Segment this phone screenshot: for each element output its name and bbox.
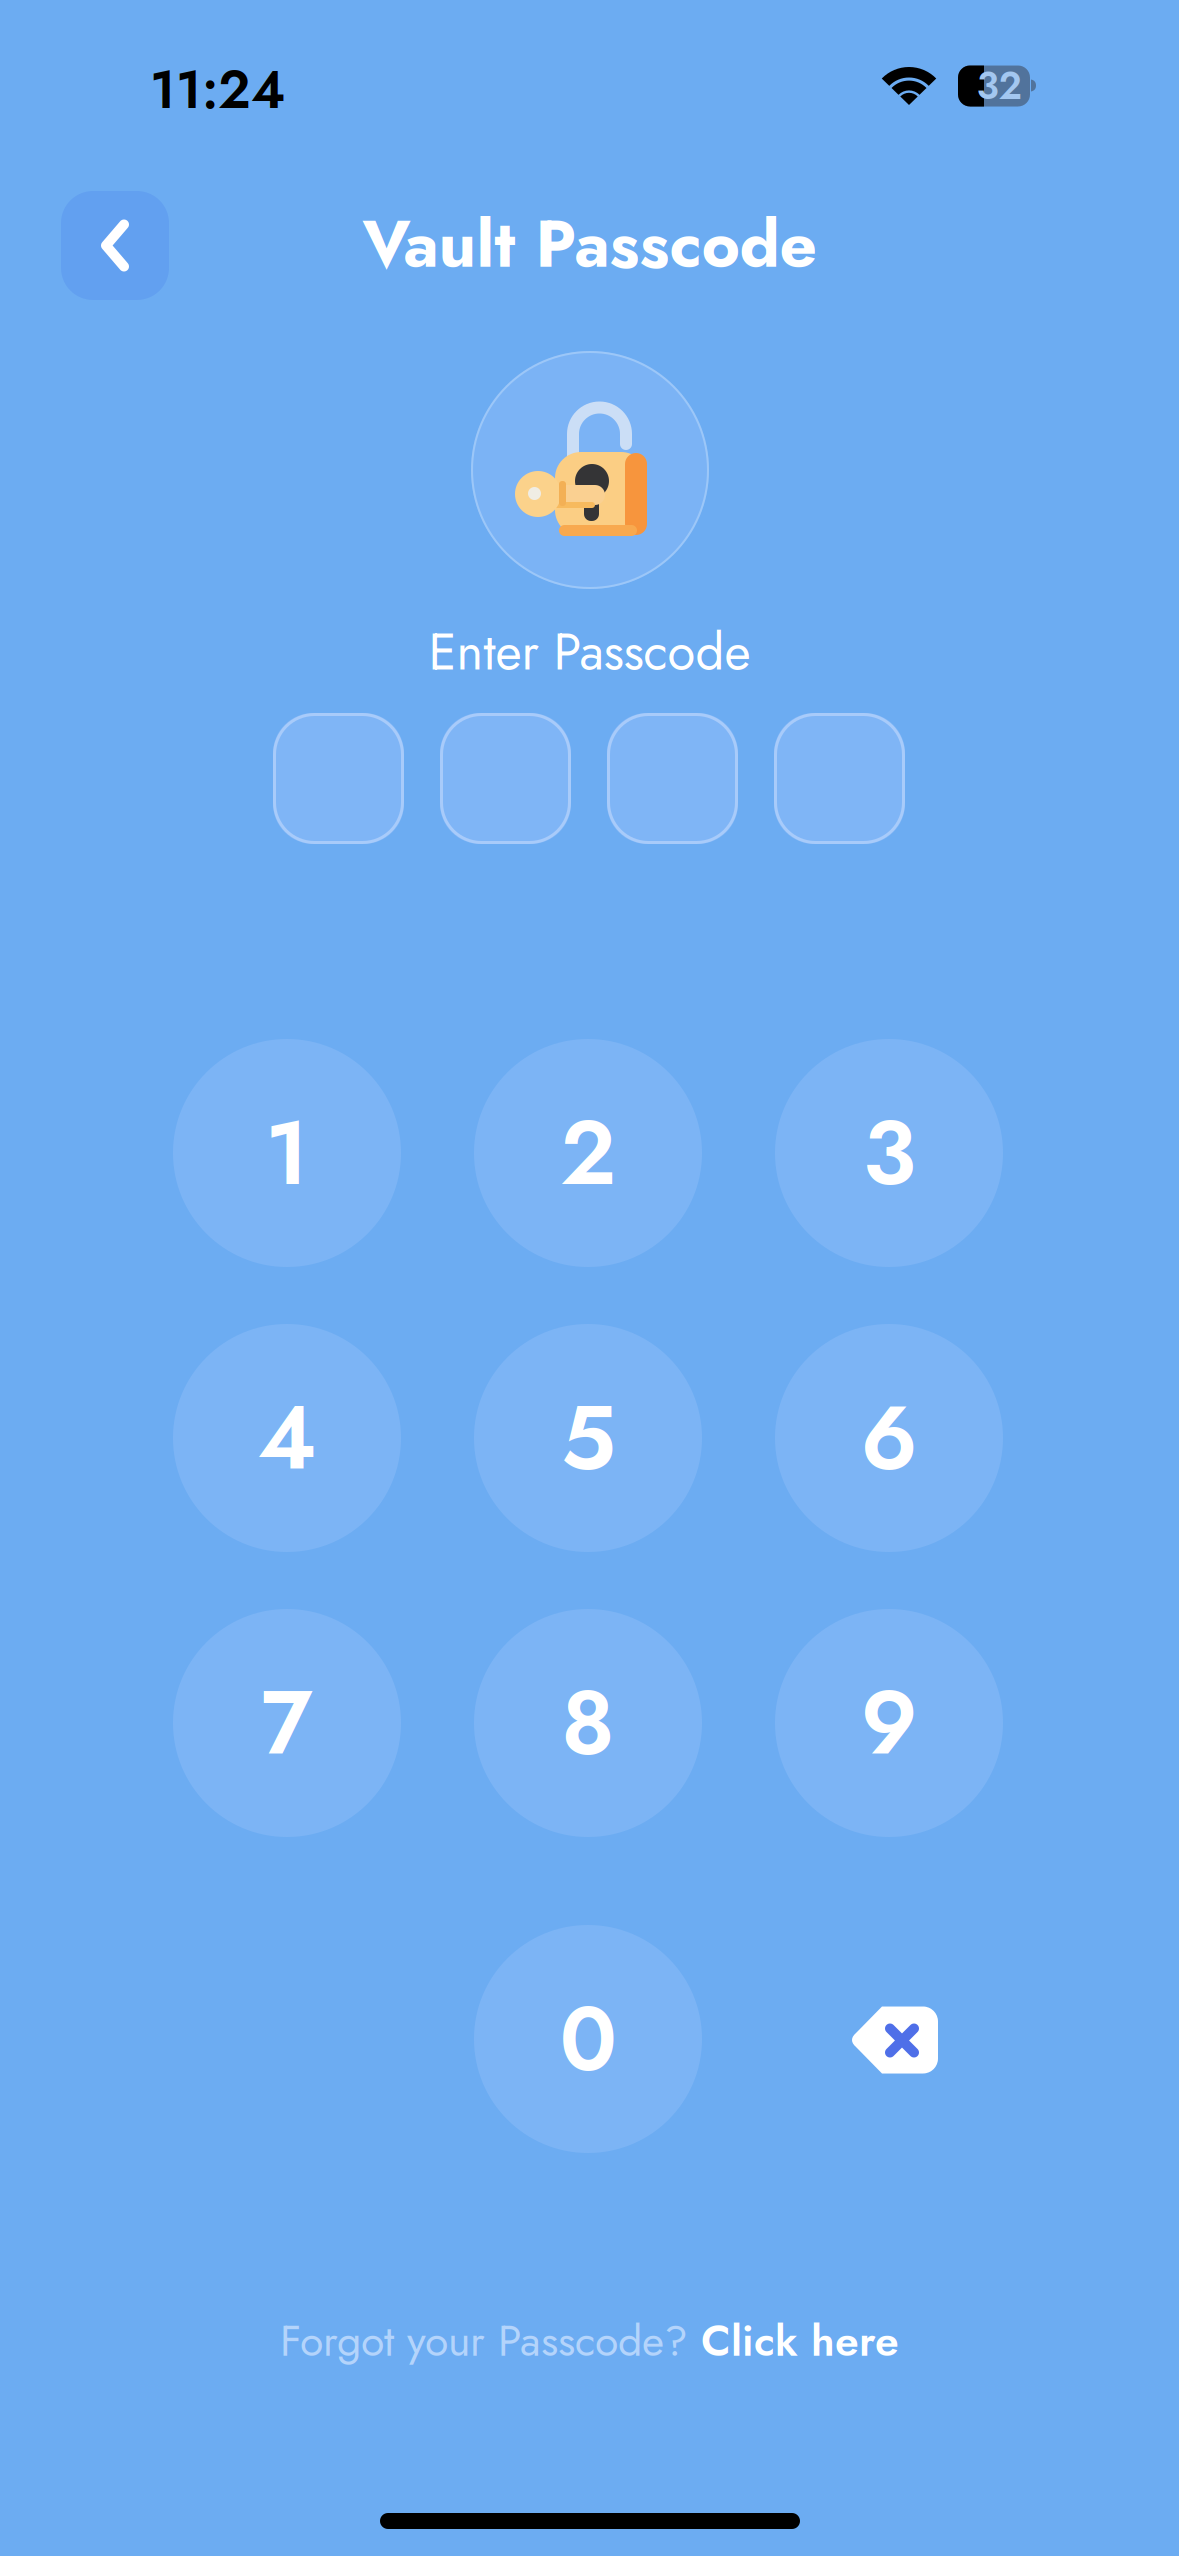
staticText: 32 xyxy=(976,59,1021,113)
button[interactable]: 0 xyxy=(474,1925,702,2153)
button[interactable]: 9 xyxy=(775,1609,1003,1837)
button[interactable]: Delete xyxy=(824,1970,964,2110)
staticText: 11:24 xyxy=(150,52,285,127)
button[interactable]: Forgot your Passcode? xyxy=(0,2311,1179,2371)
button[interactable]: 6 xyxy=(775,1324,1003,1552)
staticText: 2 xyxy=(560,1088,616,1218)
button[interactable]: 7 xyxy=(173,1609,401,1837)
staticText: Enter Passcode xyxy=(428,615,750,689)
button[interactable]: 8 xyxy=(474,1609,702,1837)
button[interactable]: 1 xyxy=(173,1039,401,1267)
staticText: Forgot your Passcode? xyxy=(280,2310,701,2372)
button[interactable]: Back xyxy=(61,191,169,300)
staticText: 5 xyxy=(560,1373,615,1503)
staticText: 0 xyxy=(559,1974,616,2104)
staticText: Vault Passcode xyxy=(362,197,816,291)
staticText: Click here xyxy=(701,2310,899,2372)
staticText: 6 xyxy=(860,1373,917,1503)
staticText: 1 xyxy=(265,1088,309,1218)
staticText: 9 xyxy=(860,1658,917,1788)
button[interactable]: 5 xyxy=(474,1324,702,1552)
staticText: 3 xyxy=(862,1088,915,1218)
staticText: 8 xyxy=(561,1658,615,1788)
button[interactable]: 4 xyxy=(173,1324,401,1552)
staticText: 7 xyxy=(261,1658,313,1788)
button[interactable]: 2 xyxy=(474,1039,702,1267)
button[interactable]: 3 xyxy=(775,1039,1003,1267)
staticText: 4 xyxy=(257,1373,316,1503)
